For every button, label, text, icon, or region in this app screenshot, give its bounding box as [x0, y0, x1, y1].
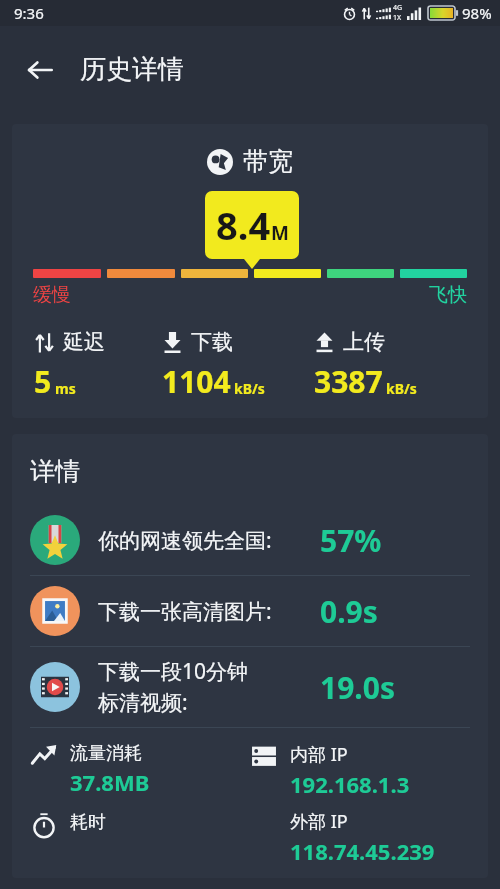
- button[interactable]: 下载一段10分钟: [12, 647, 488, 727]
- staticText: 3387: [314, 361, 383, 402]
- staticText: 缓慢: [33, 283, 71, 307]
- staticText: 118.74.45.239: [290, 836, 435, 866]
- staticText: 下载一段10分钟: [98, 657, 249, 686]
- staticText: 0.9s: [320, 591, 378, 632]
- staticText: 你的网速领先全国:: [98, 526, 272, 555]
- staticText: 内部 IP: [290, 742, 348, 767]
- staticText: 上传: [343, 329, 385, 355]
- staticText: 下载一张高清图片:: [98, 597, 272, 626]
- staticText: 流量消耗: [70, 742, 142, 765]
- staticText: kB/s: [234, 379, 265, 398]
- staticText: 9:36: [14, 3, 44, 23]
- staticText: 4G: [393, 3, 403, 13]
- staticText: 192.168.1.3: [290, 769, 410, 799]
- staticText: 5: [34, 361, 52, 402]
- staticText: 飞快: [429, 283, 467, 307]
- staticText: 详情: [30, 456, 80, 487]
- button[interactable]: 下载一张高清图片:: [12, 576, 488, 646]
- button[interactable]: 你的网速领先全国:: [12, 505, 488, 575]
- staticText: ms: [55, 379, 76, 398]
- staticText: 57%: [320, 520, 382, 561]
- staticText: 19.0s: [320, 667, 395, 708]
- staticText: kB/s: [386, 379, 417, 398]
- staticText: M: [271, 220, 289, 246]
- staticText: 98%: [462, 3, 492, 23]
- staticText: 耗时: [70, 811, 106, 834]
- staticText: 带宽: [243, 146, 293, 177]
- staticText: 1X: [393, 13, 402, 23]
- staticText: 下载: [191, 329, 233, 355]
- staticText: 1104: [162, 361, 231, 402]
- staticText: 8.4: [216, 199, 271, 251]
- button[interactable]: Back: [16, 46, 64, 94]
- staticText: 37.8MB: [70, 767, 150, 797]
- staticText: 标清视频:: [98, 688, 188, 717]
- staticText: 历史详情: [80, 53, 184, 86]
- staticText: 外部 IP: [290, 809, 348, 834]
- staticText: 延迟: [63, 329, 105, 355]
